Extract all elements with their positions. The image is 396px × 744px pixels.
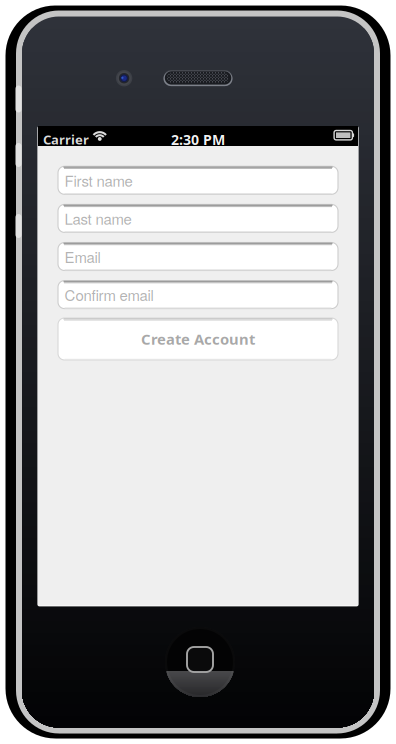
button[interactable]: Last name	[58, 204, 338, 232]
button[interactable]: First name	[58, 166, 338, 194]
staticText: 2:30 PM	[171, 130, 225, 149]
staticText: Confirm email	[65, 284, 154, 305]
button[interactable]: Confirm email	[58, 281, 338, 309]
staticText: Carrier	[43, 131, 89, 148]
staticText: Create Account	[141, 329, 255, 349]
staticText: Last name	[65, 208, 132, 229]
staticText: Email	[65, 246, 101, 267]
button[interactable]: Create Account	[58, 318, 338, 360]
button[interactable]: Email	[58, 242, 338, 270]
staticText: First name	[65, 170, 133, 191]
